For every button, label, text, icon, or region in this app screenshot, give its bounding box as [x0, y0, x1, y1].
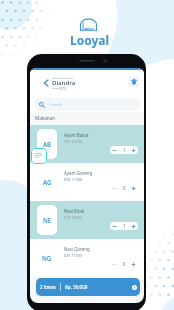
- button[interactable]: NG: [30, 239, 144, 277]
- staticText: IDR 30000: [64, 215, 83, 220]
- staticText: Makanan: [35, 115, 56, 121]
- staticText: AB: [43, 140, 52, 148]
- staticText: IDR 11000: [64, 177, 83, 182]
- staticText: Diandra: [52, 79, 76, 87]
- button[interactable]: NE: [30, 201, 144, 239]
- staticText: IDR 11000: [64, 253, 83, 258]
- button[interactable]: Increase: [129, 146, 138, 154]
- button[interactable]: AG: [30, 163, 144, 201]
- staticText: Rp. 30.000: [65, 284, 88, 290]
- staticText: Selected customer: [52, 76, 74, 79]
- staticText: NE: [43, 216, 52, 224]
- button[interactable]: Increase: [129, 184, 138, 192]
- staticText: Nasi Goreng: [64, 246, 90, 252]
- button[interactable]: AB: [30, 125, 144, 163]
- staticText: 0: [123, 185, 126, 191]
- staticText: AG: [43, 178, 52, 186]
- button[interactable]: Increase: [129, 260, 138, 268]
- staticText: 0: [123, 261, 126, 267]
- button[interactable]: Decrease: [110, 184, 119, 192]
- staticText: ••••••7479: [52, 87, 66, 91]
- staticText: Ayam Bakar: [64, 132, 89, 138]
- staticText: NG: [42, 254, 52, 262]
- button[interactable]: Back: [39, 76, 52, 89]
- button[interactable]: Decrease: [110, 222, 119, 230]
- button[interactable]: Decrease: [110, 146, 119, 154]
- button[interactable]: Increase: [129, 222, 138, 230]
- staticText: 1: [123, 223, 126, 229]
- staticText: Search: [49, 102, 63, 108]
- staticText: IDR 20000: [64, 139, 83, 144]
- button[interactable]: Delete: [128, 76, 139, 87]
- staticText: Nasi Enak: [64, 208, 85, 214]
- button[interactable]: Decrease: [110, 260, 119, 268]
- button[interactable]: Search: [39, 98, 136, 111]
- staticText: Looyal: [70, 32, 110, 48]
- staticText: Ayam Goreng: [64, 170, 93, 176]
- button[interactable]: 2 items: [40, 278, 137, 296]
- staticText: 2 items: [40, 284, 56, 290]
- staticText: 1: [123, 147, 126, 153]
- button[interactable]: Checkout: [132, 285, 137, 290]
